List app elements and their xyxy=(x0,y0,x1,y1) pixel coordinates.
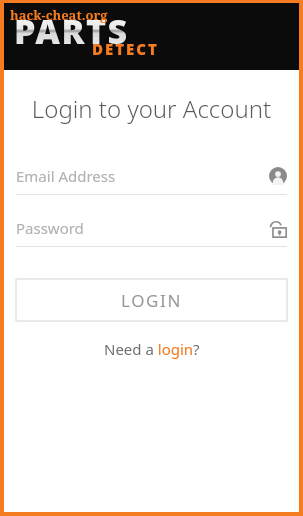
button[interactable]: Need a login? xyxy=(16,339,287,359)
staticText: hack-cheat.org xyxy=(10,6,108,24)
staticText: Need a login? xyxy=(104,339,200,359)
staticText: DETECT xyxy=(92,39,159,59)
staticText: Login to your Account xyxy=(16,92,287,125)
staticText: Password xyxy=(16,218,267,238)
staticText: Email Address xyxy=(16,166,269,186)
other: Account xyxy=(269,167,287,185)
other: Show password xyxy=(267,218,287,238)
button[interactable]: Email Address xyxy=(16,163,287,195)
staticText: LOGIN xyxy=(121,289,182,312)
staticText: PARTS xyxy=(14,8,129,54)
button[interactable]: Password xyxy=(16,215,287,247)
button[interactable]: LOGIN xyxy=(16,279,287,321)
